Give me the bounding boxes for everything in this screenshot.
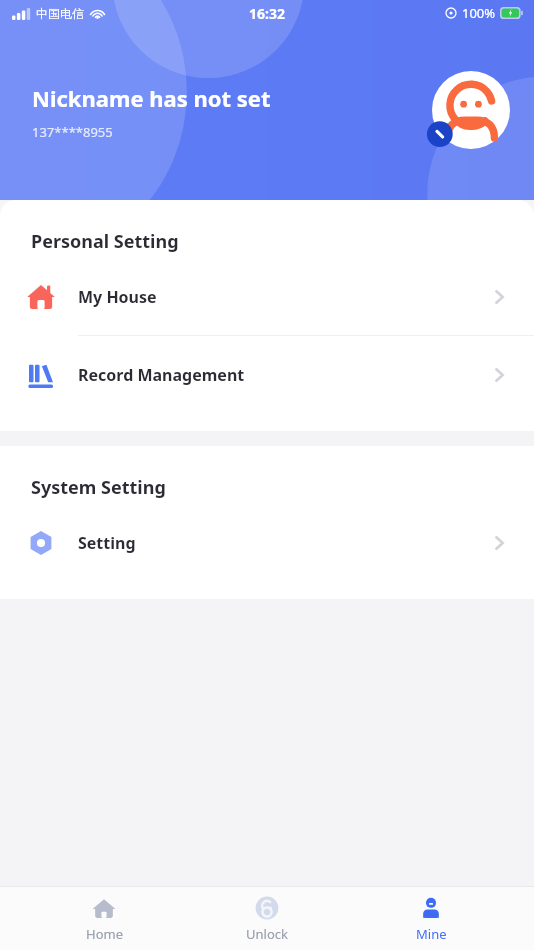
staticText: 100% — [462, 4, 496, 22]
staticText: Record Management — [78, 364, 245, 386]
button[interactable]: Setting — [0, 504, 534, 581]
staticText: Setting — [78, 532, 136, 554]
staticText: Unlock — [246, 925, 288, 943]
button[interactable]: Unlock — [207, 891, 327, 947]
button[interactable]: My House — [0, 258, 534, 335]
button[interactable]: Record Management — [0, 336, 534, 413]
staticText: Personal Setting — [31, 229, 179, 254]
staticText: Mine — [416, 925, 447, 943]
button[interactable]: Mine — [371, 891, 491, 947]
button[interactable]: Home — [44, 891, 164, 947]
staticText: System Setting — [31, 475, 166, 500]
staticText: My House — [78, 286, 157, 308]
staticText: 中国电信 — [36, 6, 84, 21]
staticText: 137****8955 — [32, 123, 113, 141]
staticText: 16:32 — [249, 4, 285, 23]
staticText: Nickname has not set — [32, 83, 271, 113]
button[interactable]: Edit profile picture — [432, 71, 510, 149]
staticText: Home — [86, 925, 123, 943]
